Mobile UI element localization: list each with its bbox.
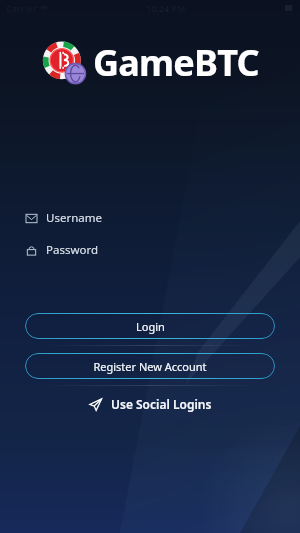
button[interactable]: Use Social Logins [75,391,226,417]
staticText: GameBTC [93,38,259,87]
staticText: Username [46,210,102,226]
staticText: Password [46,242,99,258]
staticText: Login [136,319,165,334]
other: Password [26,245,37,256]
button[interactable]: Login [25,313,275,339]
other: Username [26,213,37,224]
button[interactable]: Register New Account [25,353,275,379]
button[interactable]: Username [26,208,300,228]
staticText: Carrier [6,2,37,14]
button[interactable]: Password [26,240,300,260]
staticText: Use Social Logins [111,396,212,412]
staticText: Register New Account [93,359,207,374]
staticText: 10:24 PM [146,2,186,14]
